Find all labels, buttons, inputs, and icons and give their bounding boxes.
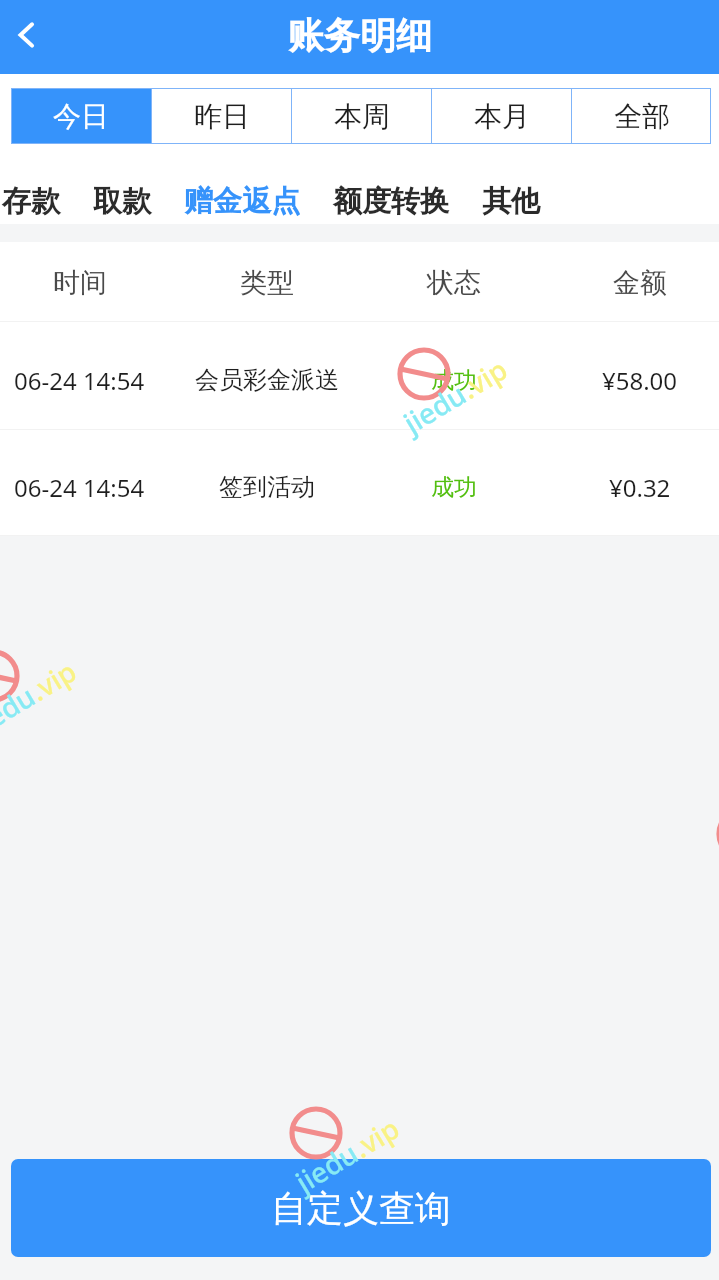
staticText: 状态 [427,266,481,300]
staticText: 其他 [482,183,540,220]
button[interactable]: 本周 [292,88,431,144]
button[interactable]: 全部 [572,88,711,144]
staticText: 全部 [614,99,670,134]
button[interactable]: 额度转换 [333,180,449,222]
staticText: 签到活动 [219,472,315,502]
staticText: 时间 [53,266,107,300]
staticText: .vip [23,651,83,709]
button[interactable]: 今日 [11,88,151,144]
staticText: 本周 [334,99,390,134]
staticText: 取款 [93,183,151,220]
button[interactable]: 存款 [2,180,60,222]
button[interactable]: 其他 [482,180,540,222]
button[interactable]: 自定义查询 [11,1159,711,1257]
staticText: ¥58.00 [602,364,678,397]
staticText: 类型 [240,266,294,300]
button[interactable]: 昨日 [152,88,291,144]
staticText: 本月 [474,99,530,134]
staticText: .vip [346,1108,406,1166]
staticText: 成功 [431,473,477,502]
staticText: jiedu [0,676,42,743]
staticText: 成功 [431,366,477,395]
staticText: 会员彩金派送 [195,365,339,395]
staticText: .vip [454,349,514,407]
button[interactable]: Back [0,9,56,65]
staticText: 额度转换 [333,183,449,220]
staticText: 06-24 14:54 [14,364,145,397]
button[interactable]: 赠金返点 [184,180,300,222]
staticText: 今日 [53,99,109,134]
staticText: ¥0.32 [609,471,671,504]
staticText: 自定义查询 [271,1186,451,1231]
button[interactable]: 取款 [93,180,151,222]
staticText: 赠金返点 [184,183,300,220]
staticText: jiedu [288,1133,365,1200]
staticText: 存款 [2,183,60,220]
staticText: 金额 [613,266,667,300]
staticText: 昨日 [194,99,250,134]
staticText: 06-24 14:54 [14,471,145,504]
staticText: jiedu [396,374,473,441]
button[interactable]: 本月 [432,88,571,144]
staticText: 账务明细 [288,13,432,58]
